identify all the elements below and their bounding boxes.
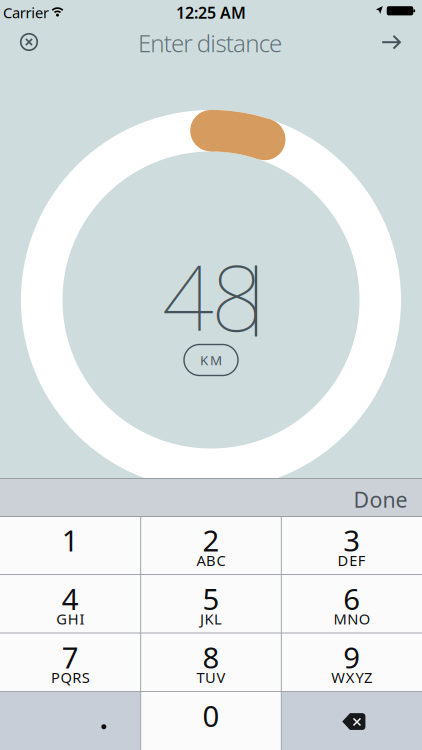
button[interactable]: 2 (141, 516, 281, 574)
staticText: 1 (62, 521, 79, 560)
staticText: JKL (200, 609, 222, 628)
button[interactable]: 9 (281, 633, 422, 691)
button[interactable]: . (0, 691, 141, 750)
button[interactable]: Submit (382, 34, 401, 50)
staticText: DEF (338, 550, 366, 570)
staticText: 12:25 AM (176, 2, 246, 23)
staticText: Enter distance (138, 27, 282, 59)
staticText: Carrier (3, 3, 49, 22)
button[interactable]: 4 (0, 574, 141, 633)
staticText: PQRS (51, 667, 90, 687)
button[interactable]: KM (184, 344, 238, 375)
staticText: 48 (162, 236, 263, 356)
staticText: 2 (202, 521, 219, 560)
staticText: TUV (196, 667, 226, 687)
button[interactable]: 6 (281, 574, 422, 633)
button[interactable]: 0 (141, 691, 281, 750)
button[interactable]: 8 (141, 633, 281, 691)
staticText: GHI (56, 609, 84, 628)
staticText: MNO (334, 609, 370, 628)
staticText: 0 (202, 696, 219, 735)
staticText: ABC (196, 550, 226, 570)
staticText: WXYZ (331, 667, 372, 687)
button[interactable]: Done (344, 480, 416, 518)
staticText: 8 (202, 638, 219, 677)
staticText: 4 (62, 579, 79, 618)
staticText: 3 (343, 521, 360, 560)
staticText: 6 (343, 579, 360, 618)
button[interactable]: 5 (141, 574, 281, 633)
staticText: 7 (62, 638, 79, 677)
staticText: Done (353, 485, 407, 514)
staticText: 5 (202, 579, 219, 618)
button[interactable]: 1 (0, 516, 141, 574)
button[interactable]: 3 (281, 516, 422, 574)
staticText: KM (200, 351, 222, 369)
button[interactable]: Delete (281, 691, 422, 750)
button[interactable]: 7 (0, 633, 141, 691)
button[interactable]: Close (16, 29, 42, 55)
staticText: 9 (343, 638, 360, 677)
